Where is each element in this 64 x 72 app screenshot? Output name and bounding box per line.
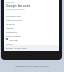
staticText: About [6, 42, 13, 45]
staticText: People [6, 26, 14, 29]
button[interactable]: People [6, 25, 57, 29]
staticText: Settings [6, 1, 15, 4]
button[interactable]: Storage [6, 37, 57, 41]
staticText: Personal info [6, 14, 21, 17]
staticText: Privacy Terms Help [6, 47, 27, 50]
staticText: Storage [9, 38, 18, 41]
staticText: Payments [6, 30, 18, 33]
staticText: Subscriptions [6, 34, 22, 37]
staticText: Manage your Google Account [15, 64, 49, 67]
button[interactable]: Subscriptions [6, 33, 57, 37]
staticText: Data & privacy [6, 18, 23, 21]
button[interactable]: Security [6, 21, 57, 25]
staticText: Google Account [6, 4, 31, 8]
button[interactable]: Payments [6, 29, 57, 33]
button[interactable]: Data & privacy [6, 17, 57, 21]
staticText: Security [6, 22, 15, 25]
button[interactable]: Personal info [6, 13, 57, 17]
button[interactable]: About [6, 41, 57, 45]
staticText: name@gmail.com [6, 8, 25, 11]
